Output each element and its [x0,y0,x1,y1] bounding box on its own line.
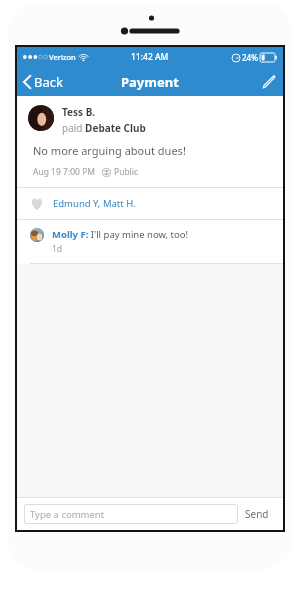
staticText: 11:42 AM [131,51,169,63]
staticText: Payment [121,73,179,91]
staticText: Send [245,507,269,521]
staticText: 1d [52,243,63,255]
staticText: paid Debate Club [62,121,146,135]
staticText: Verizon [49,52,76,62]
staticText: No more arguing about dues! [33,143,186,158]
button[interactable]: Tess B. [17,96,283,135]
staticText: Tess B. [62,105,96,119]
staticText: 24% [242,52,258,63]
button[interactable]: Send [238,498,276,530]
staticText: Edmund Y, Matt H. [53,197,136,210]
staticText: Type a comment [30,508,105,521]
staticText: Molly F: I'll pay mine now, too! [52,228,189,241]
button[interactable]: Edit [254,67,283,96]
staticText: Back [34,73,63,91]
staticText: Public [114,166,139,178]
button[interactable]: Edmund Y, Matt H. [17,188,283,219]
staticText: Aug 19 7:00 PM [33,166,95,178]
button[interactable]: Back [17,67,71,96]
button[interactable]: Molly F: I'll pay mine now, too! [17,220,283,263]
button[interactable]: Type a comment [24,504,238,524]
